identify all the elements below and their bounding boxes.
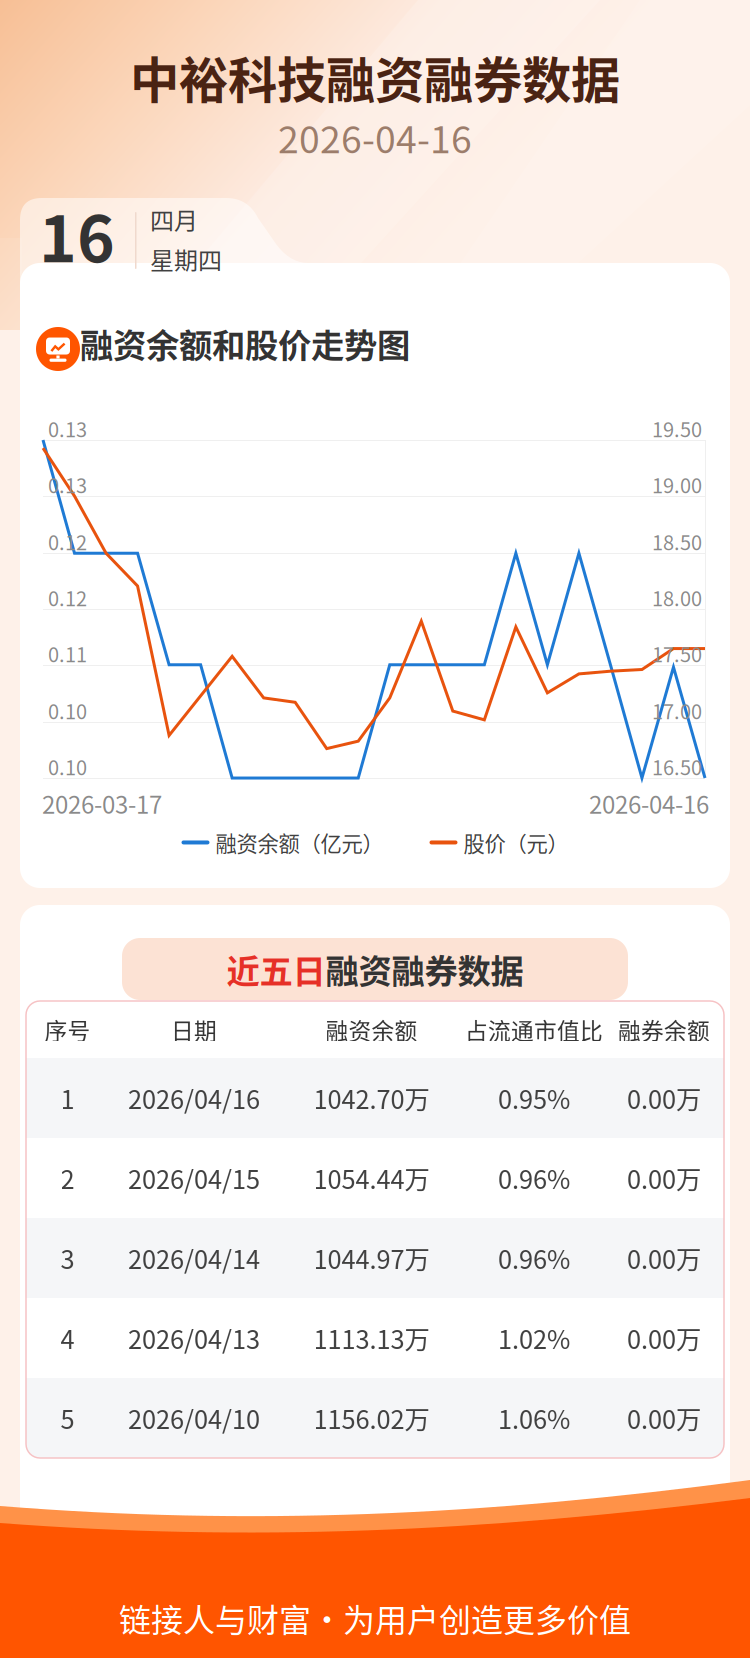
- staticText: 16.50: [652, 752, 702, 781]
- staticText: 链接人与财富·为用户创造更多价值: [119, 1595, 631, 1641]
- staticText: 18.00: [652, 583, 702, 612]
- staticText: 星期四: [150, 242, 222, 277]
- staticText: 0.95%: [498, 1080, 570, 1116]
- staticText: 0.96%: [498, 1240, 570, 1276]
- staticText: 0.00万: [627, 1080, 701, 1116]
- staticText: 1054.44万: [313, 1160, 429, 1196]
- staticText: 0.12: [48, 583, 87, 612]
- staticText: 16: [39, 188, 115, 281]
- staticText: 2026/04/13: [128, 1320, 260, 1356]
- staticText: 0.10: [48, 752, 87, 781]
- staticText: 2: [60, 1160, 74, 1196]
- staticText: 0.00万: [627, 1240, 701, 1276]
- staticText: 2026-04-16: [589, 786, 709, 821]
- staticText: 19.50: [652, 414, 702, 443]
- staticText: 1: [60, 1080, 74, 1116]
- staticText: 0.96%: [498, 1160, 570, 1196]
- staticText: 2026/04/16: [128, 1080, 260, 1116]
- staticText: 占流通市值比: [465, 1013, 603, 1046]
- staticText: 17.50: [652, 639, 702, 668]
- staticText: 日期: [171, 1013, 217, 1046]
- staticText: 1.06%: [498, 1400, 570, 1436]
- staticText: 4: [60, 1320, 74, 1356]
- staticText: 融资余额（亿元）: [215, 827, 383, 858]
- staticText: 0.12: [48, 527, 87, 556]
- staticText: 2026/04/10: [128, 1400, 260, 1436]
- staticText: 0.13: [48, 414, 87, 443]
- staticText: 0.11: [48, 639, 87, 668]
- staticText: 0.00万: [627, 1400, 701, 1436]
- staticText: 融券余额: [618, 1013, 710, 1046]
- staticText: 3: [60, 1240, 74, 1276]
- staticText: 股价（元）: [463, 827, 568, 858]
- staticText: 中裕科技融资融券数据: [130, 41, 620, 112]
- staticText: 序号: [44, 1013, 90, 1046]
- staticText: 2026-04-16: [278, 110, 472, 164]
- staticText: 2026/04/14: [128, 1240, 260, 1276]
- staticText: 1.02%: [498, 1320, 570, 1356]
- staticText: 17.00: [652, 696, 702, 725]
- staticText: 19.00: [652, 470, 702, 499]
- staticText: 融资余额和股价走势图: [80, 319, 410, 367]
- staticText: 近五日: [226, 945, 325, 993]
- staticText: 1042.70万: [313, 1080, 429, 1116]
- staticText: 1113.13万: [313, 1320, 429, 1356]
- staticText: 融资余额: [325, 1013, 417, 1046]
- staticText: 0.13: [48, 470, 87, 499]
- staticText: 融资融券数据: [325, 945, 523, 993]
- staticText: 2026-03-17: [42, 786, 162, 821]
- staticText: 0.10: [48, 696, 87, 725]
- staticText: 四月: [150, 202, 198, 237]
- staticText: 18.50: [652, 527, 702, 556]
- staticText: 5: [60, 1400, 74, 1436]
- staticText: 0.00万: [627, 1160, 701, 1196]
- staticText: 1044.97万: [313, 1240, 429, 1276]
- staticText: 2026/04/15: [128, 1160, 260, 1196]
- staticText: 1156.02万: [313, 1400, 429, 1436]
- staticText: 0.00万: [627, 1320, 701, 1356]
